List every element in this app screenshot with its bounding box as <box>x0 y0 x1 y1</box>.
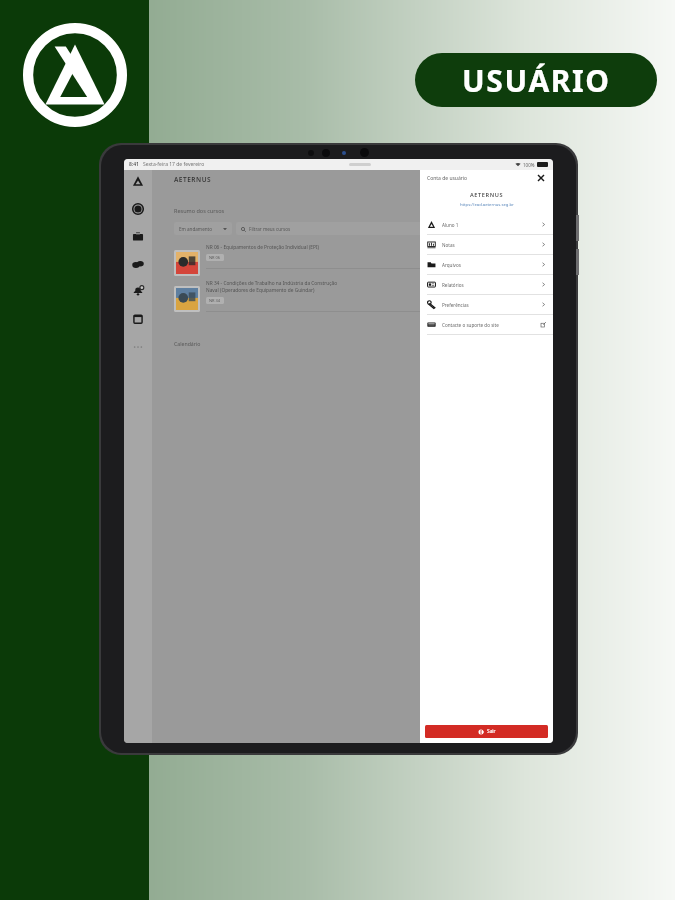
button[interactable]: USUÁRIO <box>415 53 657 107</box>
button[interactable]: Painel <box>132 203 144 215</box>
staticText: NR 06 - Equipamentos de Proteção Individ… <box>206 244 319 251</box>
staticText: Relatórios <box>442 282 464 288</box>
button[interactable]: Mensagens <box>132 259 144 271</box>
button[interactable]: Notas <box>420 235 553 255</box>
staticText: NR 34 - Condições de Trabalho na Indústr… <box>206 280 338 294</box>
staticText: Calendário <box>174 340 201 347</box>
staticText: Resumo dos cursos <box>174 207 225 214</box>
staticText: USUÁRIO <box>462 60 611 101</box>
button[interactable]: Filtrar meus cursos <box>236 222 543 235</box>
button[interactable]: Contacte o suporte do site <box>420 315 553 335</box>
staticText: Notas <box>442 242 455 248</box>
button[interactable]: Home <box>132 175 144 187</box>
staticText: Preferências <box>442 302 469 308</box>
staticText: Conta de usuário <box>427 175 468 182</box>
staticText: Arquivos <box>442 262 461 268</box>
button[interactable]: Sair <box>425 725 548 738</box>
staticText: Sexta-feira 17 de fevereiro <box>143 161 205 168</box>
staticText: Contacte o suporte do site <box>442 322 499 328</box>
staticText: 8:41 <box>129 161 139 168</box>
staticText: https://ead.aeternus.seg.br <box>460 202 514 208</box>
staticText: 100% <box>523 162 535 168</box>
button[interactable]: Relatórios <box>420 275 553 295</box>
staticText: Em andamento <box>179 226 213 232</box>
staticText: NR 06 <box>209 255 221 260</box>
button[interactable]: Preferências <box>420 295 553 315</box>
button[interactable]: Fechar <box>536 173 546 183</box>
button[interactable]: Em andamento <box>174 222 232 235</box>
staticText: NR 34 <box>209 298 221 303</box>
button[interactable]: Calendário <box>132 313 144 325</box>
staticText: AETERNUS <box>470 191 504 199</box>
button[interactable]: Cursos <box>132 231 144 243</box>
button[interactable]: Notificações <box>132 285 144 297</box>
button[interactable]: Aluno 1 <box>420 215 553 235</box>
button[interactable]: NR 34 - Condições de Trabalho na Indústr… <box>174 280 543 312</box>
staticText: Aluno 1 <box>442 222 459 228</box>
button[interactable]: Arquivos <box>420 255 553 275</box>
button[interactable]: Mais <box>132 341 144 353</box>
button[interactable]: NR 06 - Equipamentos de Proteção Individ… <box>174 244 543 270</box>
staticText: AETERNUS <box>174 175 212 184</box>
staticText: Sair <box>487 728 496 735</box>
staticText: Filtrar meus cursos <box>249 226 291 232</box>
